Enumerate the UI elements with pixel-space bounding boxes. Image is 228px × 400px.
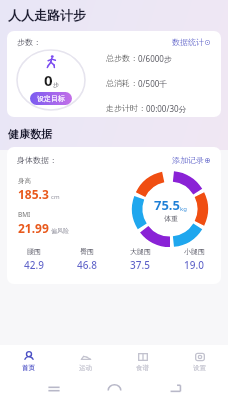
staticText: 小腿围 <box>184 247 205 256</box>
staticText: BMI <box>18 210 31 219</box>
staticText: 46.8 <box>77 258 97 272</box>
staticText: kg <box>180 205 187 213</box>
other: Home <box>107 381 122 396</box>
staticText: 人人走路计步 <box>8 7 86 23</box>
staticText: 体重 <box>164 214 178 223</box>
button[interactable]: 大腿围 <box>113 247 167 272</box>
other: Back <box>169 382 182 395</box>
other: Recents <box>47 382 61 396</box>
button[interactable]: 运动 <box>57 345 114 377</box>
staticText: 0 <box>44 70 53 90</box>
staticText: 运动 <box>79 364 92 372</box>
staticText: 设定目标 <box>37 94 65 103</box>
staticText: 健康数据 <box>8 127 52 141</box>
button[interactable]: 设置 <box>171 345 228 377</box>
staticText: 身体数据： <box>17 155 57 165</box>
staticText: 75.5 <box>154 196 180 214</box>
button[interactable]: 首页 <box>0 345 57 377</box>
staticText: 偏风险 <box>51 227 69 235</box>
staticText: 总步数： <box>106 53 138 63</box>
button[interactable]: 添加记录⊕ <box>170 153 213 167</box>
staticText: 总消耗： <box>106 78 138 88</box>
staticText: 185.3 <box>18 186 49 202</box>
button[interactable]: 臀围 <box>60 247 113 272</box>
button[interactable]: 食谱 <box>114 345 171 377</box>
staticText: 37.5 <box>130 258 150 272</box>
staticText: 臀围 <box>80 247 94 256</box>
staticText: 食谱 <box>136 364 149 372</box>
staticText: 设置 <box>193 364 206 372</box>
staticText: 首页 <box>22 364 35 372</box>
staticText: 0/500千 <box>138 78 168 89</box>
staticText: 身高 <box>18 177 31 185</box>
staticText: 00:00/30分 <box>146 103 187 114</box>
staticText: 走步计时： <box>106 103 146 113</box>
staticText: 添加记录⊕ <box>172 155 211 165</box>
staticText: 大腿围 <box>130 247 151 256</box>
staticText: cm <box>51 193 60 201</box>
staticText: 42.9 <box>24 258 44 272</box>
staticText: 数据统计⊙ <box>172 37 211 47</box>
button[interactable]: 小腿围 <box>167 247 221 272</box>
button[interactable]: 设定目标 <box>30 92 72 105</box>
staticText: 19.0 <box>184 258 204 272</box>
staticText: 0/6000步 <box>138 53 172 64</box>
staticText: 21.99 <box>18 220 49 236</box>
button[interactable]: 数据统计⊙ <box>170 35 213 49</box>
button[interactable]: 腰围 <box>7 247 60 272</box>
staticText: 步 <box>53 81 59 89</box>
staticText: 腰围 <box>27 247 41 256</box>
staticText: 步数： <box>17 37 41 47</box>
